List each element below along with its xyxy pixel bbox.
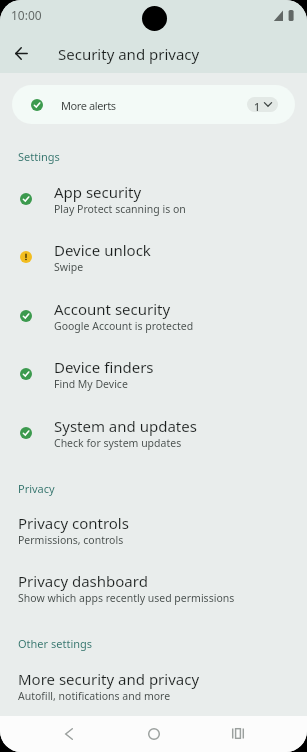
staticText: 1 [254,100,261,112]
staticText: Device finders [54,357,154,377]
staticText: More alerts [61,98,116,113]
staticText: Device unlock [54,240,151,260]
button[interactable]: Account security [0,290,307,348]
staticText: Find My Device [54,377,128,391]
staticText: Permissions, controls [18,533,124,547]
staticText: Privacy dashboard [18,571,148,591]
staticText: Autofill, notifications and more [18,689,171,703]
button[interactable]: Home [131,713,176,752]
staticText: Swipe [54,260,84,274]
staticText: Settings [18,149,60,164]
button[interactable]: Device unlock [0,231,307,289]
staticText: System and updates [54,416,197,436]
button[interactable]: Back [46,713,91,752]
staticText: App security [54,182,142,202]
staticText: 10:00 [11,7,42,23]
button[interactable]: Privacy controls [0,504,307,562]
button[interactable]: System and updates [0,407,307,465]
staticText: Google Account is protected [54,319,194,333]
staticText: Privacy controls [18,513,129,533]
staticText: Privacy [18,481,55,496]
staticText: Security and privacy [58,44,200,64]
button[interactable]: 1 alert, expand [247,97,278,112]
button[interactable]: More security and privacy [0,660,307,718]
button[interactable]: Privacy dashboard [0,562,307,620]
staticText: Check for system updates [54,436,182,450]
staticText: Account security [54,299,171,319]
staticText: More security and privacy [18,669,200,689]
button[interactable]: Back [5,37,38,70]
button[interactable]: More alerts [12,85,295,124]
staticText: Show which apps recently used permission… [18,591,235,605]
button[interactable]: App security [0,173,307,231]
staticText: Other settings [18,636,93,651]
button[interactable]: Recent apps [215,713,260,752]
staticText: Play Protect scanning is on [54,202,186,216]
button[interactable]: Device finders [0,348,307,406]
